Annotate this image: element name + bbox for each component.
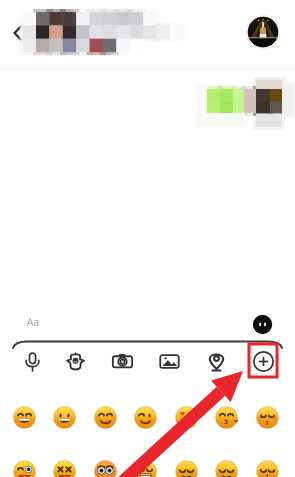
button[interactable]: Emoji [134, 460, 157, 477]
button[interactable]: Contact name [34, 10, 184, 55]
button[interactable]: Back [2, 17, 34, 49]
button[interactable]: Profile photo [246, 15, 280, 49]
button[interactable]: Emoji [53, 406, 76, 429]
button[interactable]: Emoji [215, 460, 238, 477]
button[interactable]: Aa [14, 308, 244, 334]
button[interactable]: Location [203, 348, 229, 374]
button[interactable]: Emoji [215, 406, 238, 429]
button[interactable]: Photo gallery [156, 348, 182, 374]
button[interactable]: Emoji [175, 406, 198, 429]
button[interactable]: Emoji [134, 406, 157, 429]
button[interactable]: Emoji [13, 406, 36, 429]
button[interactable]: Emoji [175, 460, 198, 477]
button[interactable]: Voice message [19, 348, 45, 374]
button[interactable]: Stickers [252, 314, 273, 335]
staticText: Aa [27, 315, 39, 329]
button[interactable]: Emoji [256, 406, 279, 429]
button[interactable]: Emoji [94, 460, 117, 477]
button[interactable]: Avatar sticker [62, 348, 88, 374]
button[interactable]: More options [250, 348, 276, 374]
button[interactable]: Emoji [94, 406, 117, 429]
button[interactable]: Camera [109, 348, 135, 374]
button[interactable]: Emoji [13, 460, 36, 477]
button[interactable]: Emoji [256, 460, 279, 477]
button[interactable]: Emoji [53, 460, 76, 477]
